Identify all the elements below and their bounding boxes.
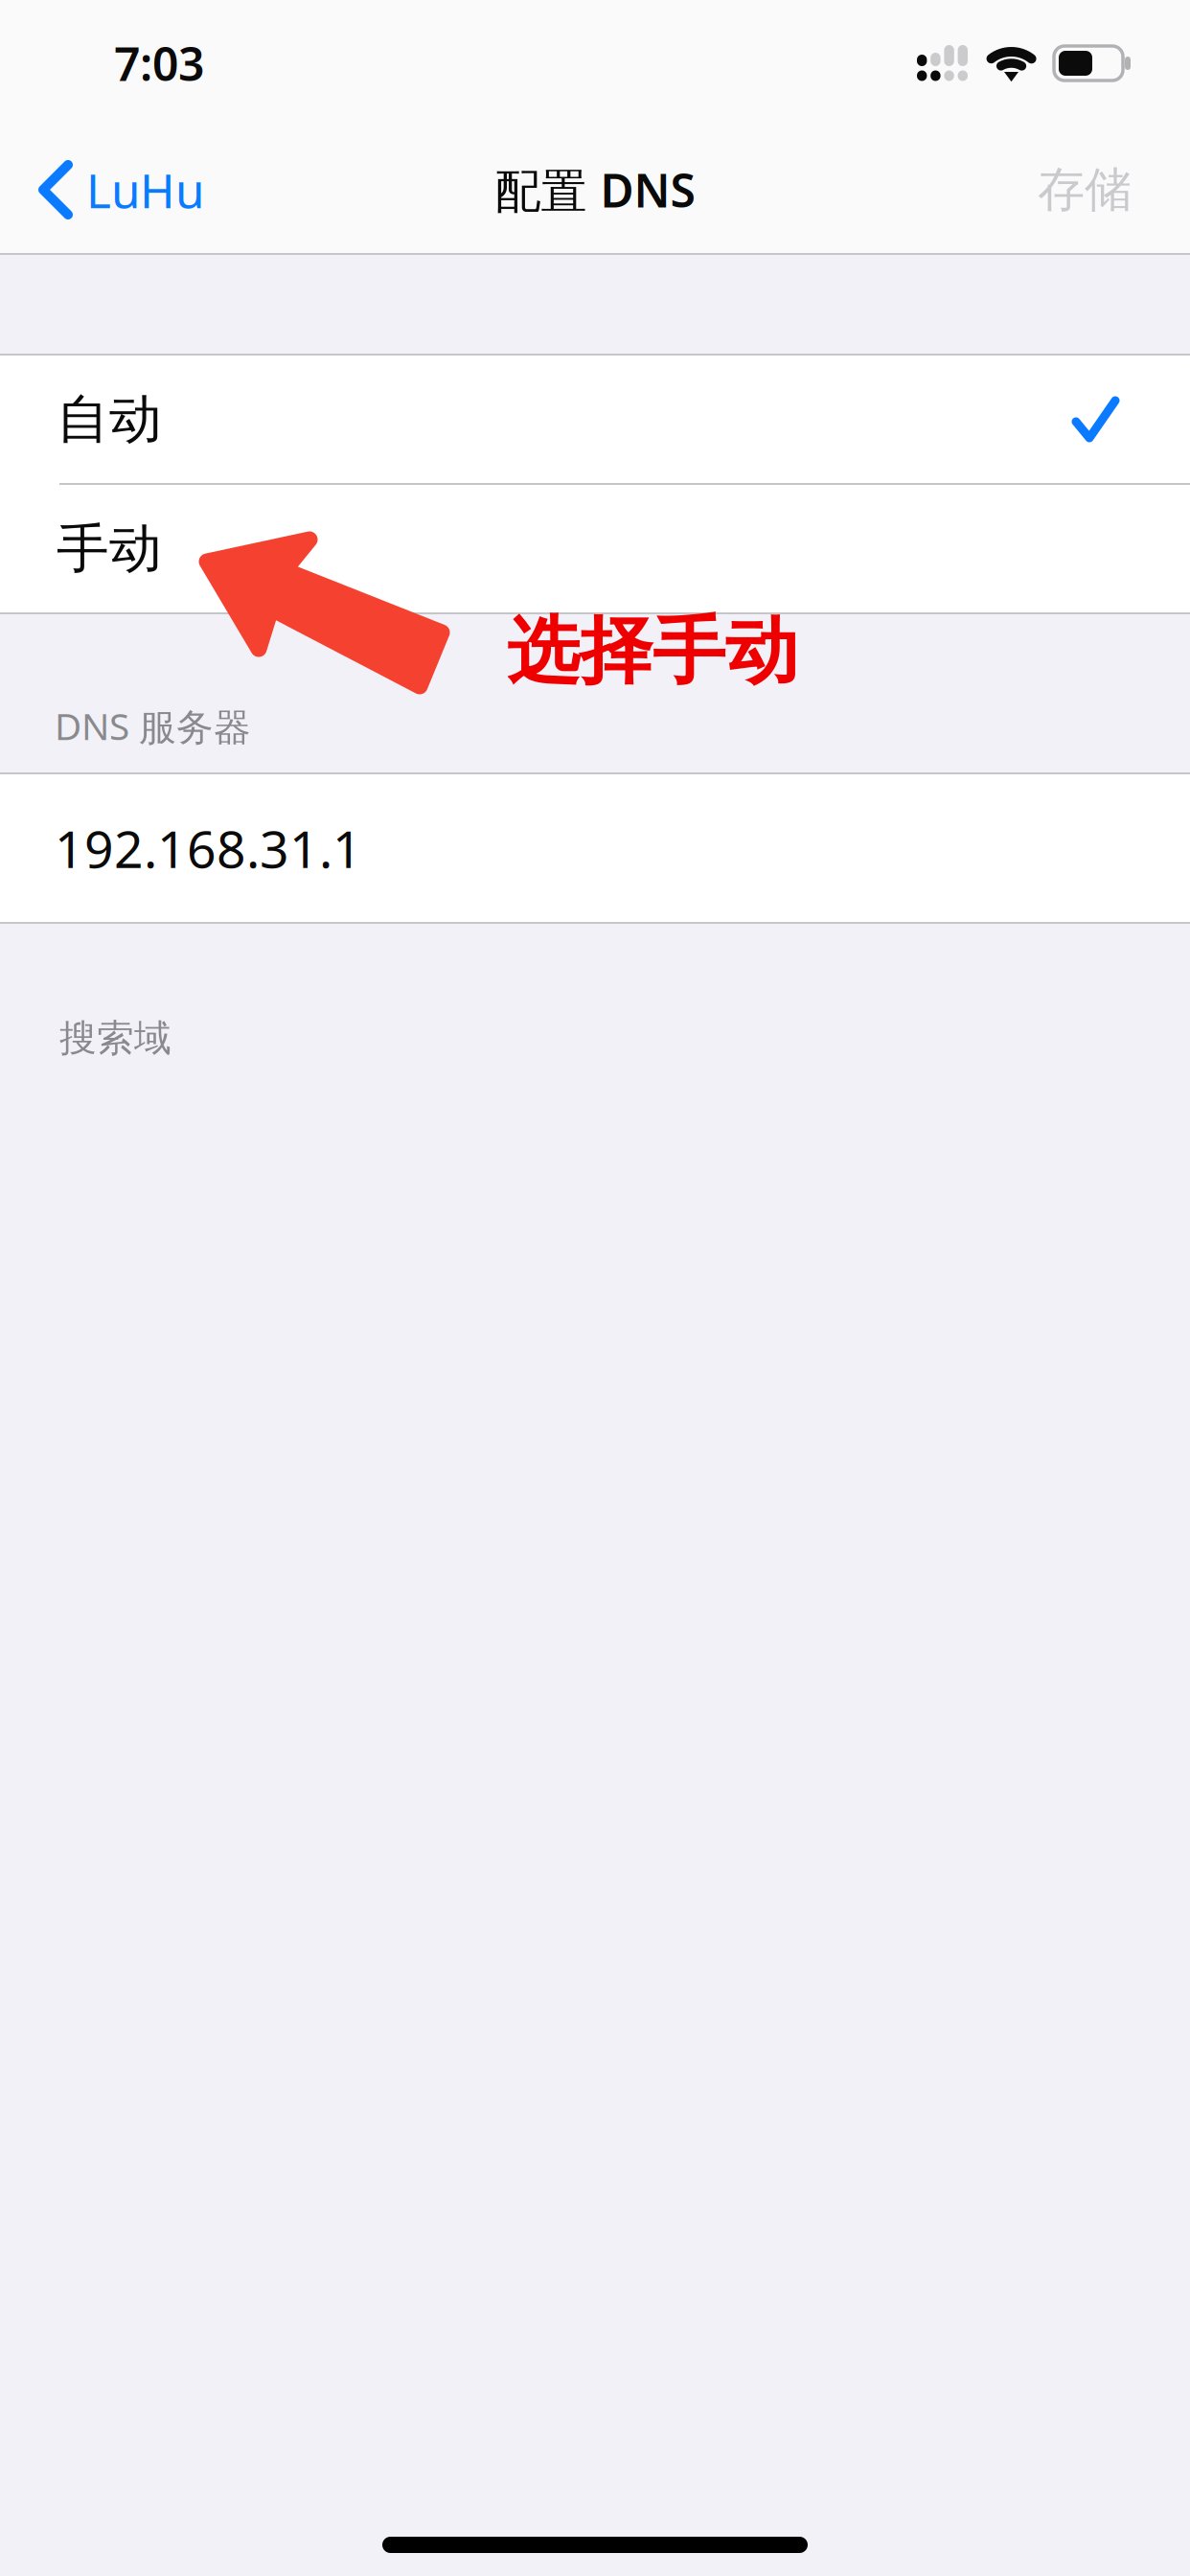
staticText: 存储 [1038,161,1132,219]
staticText: DNS 服务器 [55,701,251,750]
staticText: 搜索域 [59,1015,172,1061]
staticText: 自动 [57,387,162,451]
button[interactable]: 192.168.31.1 [0,774,1190,922]
staticText: 192.168.31.1 [55,814,362,882]
staticText: 手动 [57,516,162,581]
staticText: LuHu [86,158,204,221]
button[interactable]: 返回 LuHu [0,126,231,253]
button[interactable]: 自动 [0,356,1190,483]
button[interactable]: 手动 [0,485,1190,612]
staticText: 选择手动 [507,607,798,696]
staticText: 7:03 [114,33,204,94]
staticText: 配置 DNS [495,159,695,220]
button[interactable]: 存储 [1011,126,1190,253]
